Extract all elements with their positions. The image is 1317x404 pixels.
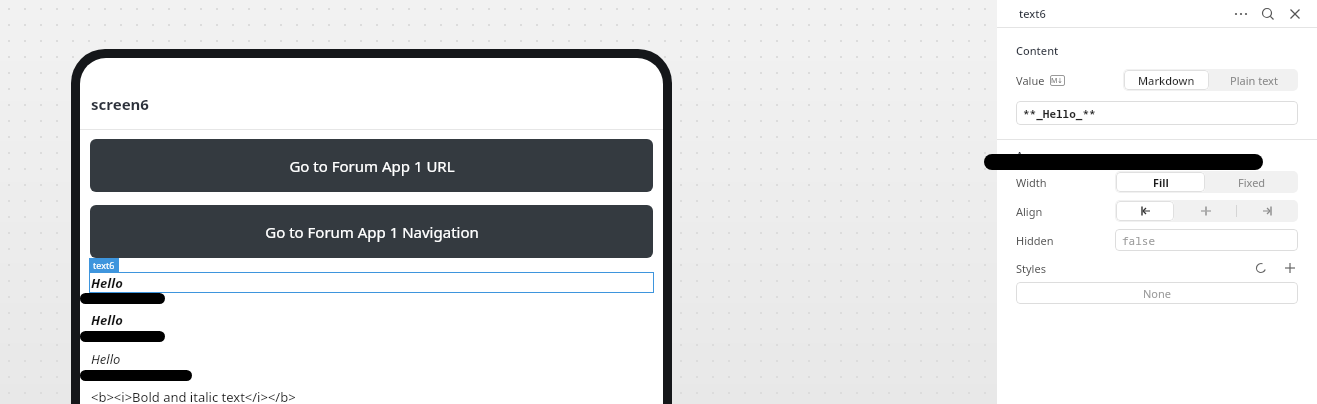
button[interactable]: Align start xyxy=(1116,201,1174,221)
button[interactable]: Align center xyxy=(1175,200,1236,222)
button[interactable]: More options xyxy=(1233,6,1249,22)
button[interactable]: Search xyxy=(1260,6,1276,22)
staticText: <b><i>Bold and italic text</i></b> xyxy=(91,388,296,404)
button[interactable]: Go to Forum App 1 Navigation xyxy=(90,205,653,258)
staticText: Plain text xyxy=(1230,73,1278,88)
button[interactable]: false xyxy=(1115,229,1298,251)
staticText: Fill xyxy=(1153,175,1169,190)
button[interactable]: Align end xyxy=(1237,200,1298,222)
button[interactable]: Add style xyxy=(1282,260,1298,276)
button[interactable]: Fill xyxy=(1116,172,1205,192)
staticText: Fixed xyxy=(1238,175,1266,190)
staticText: Value xyxy=(1016,73,1045,88)
staticText: Go to Forum App 1 Navigation xyxy=(265,222,479,242)
staticText: Content xyxy=(1016,43,1059,58)
staticText: Align xyxy=(1016,204,1043,219)
staticText: false xyxy=(1122,233,1155,248)
button[interactable]: Refresh styles xyxy=(1253,260,1269,276)
staticText: screen6 xyxy=(91,94,149,114)
staticText: Markdown xyxy=(1138,73,1195,88)
button[interactable]: Close xyxy=(1287,6,1303,22)
staticText: text6 xyxy=(1019,6,1046,21)
button[interactable]: Plain text xyxy=(1210,69,1298,91)
button[interactable]: Go to Forum App 1 URL xyxy=(90,139,653,192)
button[interactable]: Fixed xyxy=(1206,171,1298,193)
staticText: Width xyxy=(1016,175,1047,190)
staticText: M↓ xyxy=(1051,76,1064,86)
button[interactable]: Markdown xyxy=(1124,70,1209,90)
staticText: Hello xyxy=(91,274,123,292)
staticText: Hello xyxy=(91,350,121,368)
staticText: None xyxy=(1143,286,1172,301)
staticText: text6 xyxy=(93,259,115,271)
staticText: Go to Forum App 1 URL xyxy=(289,156,455,176)
button[interactable]: None xyxy=(1016,282,1298,304)
staticText: Styles xyxy=(1016,261,1046,276)
staticText: Hello xyxy=(91,311,123,329)
staticText: Hidden xyxy=(1016,233,1054,248)
staticText: Appearance xyxy=(1016,148,1079,163)
button[interactable]: **_Hello_** xyxy=(1016,101,1298,125)
staticText: **_Hello_** xyxy=(1023,106,1096,121)
